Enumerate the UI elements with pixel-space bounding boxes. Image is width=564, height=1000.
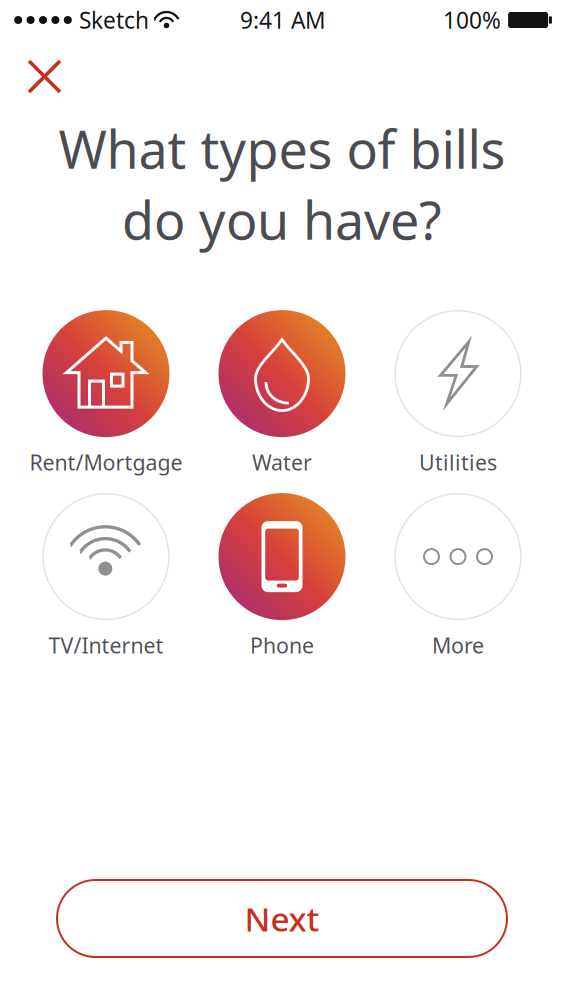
button[interactable]: Phone: [194, 493, 370, 659]
staticText: Sketch: [79, 5, 149, 35]
button[interactable]: TV/Internet: [18, 493, 194, 659]
staticText: do you have?: [122, 185, 442, 254]
button[interactable]: Close: [13, 45, 76, 108]
staticText: Phone: [250, 631, 314, 659]
staticText: 9:41 AM: [240, 5, 326, 35]
button[interactable]: Rent/Mortgage: [18, 310, 194, 476]
button[interactable]: Next: [57, 880, 507, 957]
button[interactable]: More: [370, 493, 546, 659]
staticText: More: [432, 631, 484, 659]
staticText: Water: [252, 448, 312, 476]
button[interactable]: Water: [194, 310, 370, 476]
staticText: Rent/Mortgage: [29, 448, 182, 476]
staticText: Next: [244, 896, 319, 941]
staticText: TV/Internet: [48, 631, 163, 659]
button[interactable]: Utilities: [370, 310, 546, 476]
staticText: 100%: [443, 5, 501, 35]
staticText: Utilities: [419, 448, 497, 476]
staticText: What types of bills: [58, 114, 505, 183]
